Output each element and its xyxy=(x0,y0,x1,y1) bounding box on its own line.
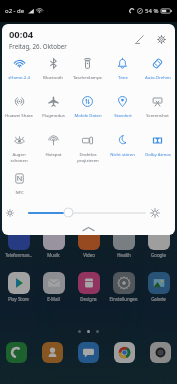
button[interactable]: Einstellungen xyxy=(107,272,140,302)
staticText: NFC xyxy=(15,189,24,195)
staticText: Bluetooth xyxy=(43,74,63,80)
staticText: sHome-2.4 xyxy=(8,74,30,80)
button[interactable]: E-Mail xyxy=(37,272,70,302)
staticText: Dolby Atmos xyxy=(145,151,171,157)
button[interactable]: Health xyxy=(107,228,140,258)
button[interactable]: Galerie xyxy=(142,272,175,302)
button[interactable]: Mobile Daten xyxy=(70,96,105,118)
button[interactable]: Play Store xyxy=(2,272,35,302)
button[interactable]: Designs xyxy=(72,272,105,302)
staticText: Nicht stören xyxy=(110,151,135,157)
staticText: o2 - de xyxy=(5,7,25,15)
button[interactable]: Video xyxy=(72,228,105,258)
staticText: Mobile Daten xyxy=(74,112,102,118)
staticText: 54 % xyxy=(145,7,159,15)
button[interactable]: Auto-Drehen xyxy=(140,58,175,80)
staticText: Google xyxy=(151,252,166,258)
staticText: E-Mail xyxy=(47,296,60,302)
button[interactable]: NFC xyxy=(2,173,36,195)
staticText: Flugmodus xyxy=(42,112,65,118)
staticText: Freitag, 26. Oktober xyxy=(9,42,67,50)
staticText: Play Store xyxy=(8,296,29,302)
button[interactable]: Flugmodus xyxy=(36,96,70,118)
button[interactable]: Huawei Share xyxy=(2,96,36,118)
staticText: Video xyxy=(83,252,95,258)
button[interactable]: Einklappen xyxy=(2,223,175,235)
button[interactable]: Standort xyxy=(105,96,140,118)
button[interactable]: Dolby Atmos xyxy=(140,135,175,157)
staticText: Galerie xyxy=(151,296,166,302)
staticText: Health xyxy=(117,252,131,258)
button[interactable]: App xyxy=(78,342,99,363)
staticText: Huawei Share xyxy=(5,112,33,118)
staticText: 00:04 xyxy=(9,28,34,41)
button[interactable]: Helligkeit xyxy=(63,207,74,218)
staticText: Augen schonen xyxy=(10,151,28,163)
button[interactable]: Drahtlos projizieren xyxy=(70,135,105,163)
button[interactable]: Töne xyxy=(105,58,140,80)
button[interactable]: App xyxy=(6,342,27,363)
button[interactable]: Bearbeiten xyxy=(130,30,148,48)
staticText: Auto-Drehen xyxy=(145,74,171,80)
button[interactable]: Taschenlampe xyxy=(70,58,105,80)
button[interactable]: Telefonman.. xyxy=(2,228,35,258)
staticText: Standort xyxy=(114,112,132,118)
staticText: Designs xyxy=(80,296,97,302)
button[interactable]: Screenshot xyxy=(140,96,175,118)
button[interactable]: Einstellungen xyxy=(152,30,170,48)
button[interactable]: App xyxy=(150,342,171,363)
staticText: Drahtlos projizieren xyxy=(77,151,99,163)
staticText: Taschenlampe xyxy=(73,74,102,80)
button[interactable]: Google xyxy=(142,228,175,258)
button[interactable]: Hotspot xyxy=(36,135,70,157)
staticText: Töne xyxy=(118,74,128,80)
staticText: Telefonman.. xyxy=(5,252,32,258)
button[interactable]: Augen schonen xyxy=(2,135,36,163)
button[interactable]: Nicht stören xyxy=(105,135,140,157)
button[interactable]: Musik xyxy=(37,228,70,258)
button[interactable]: Bluetooth xyxy=(36,58,70,80)
button[interactable]: App xyxy=(42,342,63,363)
button[interactable]: sHome-2.4 xyxy=(2,58,36,80)
button[interactable]: App xyxy=(114,342,135,363)
staticText: Hotspot xyxy=(45,151,62,157)
staticText: Screenshot xyxy=(146,112,169,118)
staticText: Einstellungen xyxy=(109,296,138,302)
staticText: Musik xyxy=(47,252,60,258)
